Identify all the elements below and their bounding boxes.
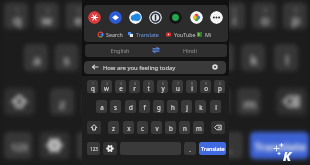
button[interactable]: 123 — [87, 142, 100, 155]
button[interactable]: 1 — [4, 2, 28, 29]
button[interactable]: 0 — [283, 2, 307, 29]
button[interactable]: 3 — [115, 80, 126, 93]
button[interactable]: Search — [98, 30, 138, 39]
button[interactable]: a — [96, 100, 107, 113]
staticText: 123 — [11, 140, 28, 153]
staticText: Mi — [205, 31, 212, 38]
button[interactable]: Swap languages — [152, 46, 160, 54]
button[interactable]: 1 — [87, 80, 98, 93]
button[interactable]: x — [83, 88, 107, 115]
button[interactable]: h — [180, 44, 204, 71]
button[interactable]: l — [210, 100, 221, 113]
button[interactable]: 7 — [172, 80, 183, 93]
button[interactable]: . — [217, 132, 243, 159]
staticText: 0 — [219, 81, 221, 86]
button[interactable]: Red app — [88, 11, 101, 24]
button[interactable]: Green app — [169, 11, 182, 24]
button[interactable]: 3 — [65, 2, 89, 29]
button[interactable]: Space — [76, 132, 210, 159]
button[interactable]: Blue app — [109, 11, 122, 24]
button[interactable]: Photos — [190, 11, 203, 24]
button[interactable]: c — [114, 88, 138, 115]
button[interactable]: Shift — [87, 121, 101, 134]
button[interactable]: f — [139, 100, 150, 113]
staticText: k — [199, 103, 203, 111]
button[interactable]: YouTube — [166, 30, 206, 39]
staticText: g — [157, 103, 161, 111]
staticText: j — [186, 103, 188, 111]
button[interactable]: Keyboard settings — [103, 142, 117, 155]
button[interactable]: Translate — [199, 142, 226, 155]
button[interactable]: k — [241, 44, 265, 71]
button[interactable]: 7 — [190, 2, 215, 29]
button[interactable]: n — [206, 88, 230, 115]
button[interactable]: b — [165, 121, 176, 134]
button[interactable]: Shift — [4, 88, 35, 115]
button[interactable]: Translate — [250, 132, 309, 159]
button[interactable]: j — [210, 44, 234, 71]
button[interactable]: k — [195, 100, 206, 113]
button[interactable]: 9 — [200, 80, 211, 93]
button[interactable]: z — [50, 88, 74, 115]
button[interactable]: m — [193, 121, 204, 134]
button[interactable]: g — [149, 44, 173, 71]
staticText: p — [291, 11, 300, 27]
button[interactable]: 4 — [129, 80, 140, 93]
staticText: g — [158, 50, 166, 67]
staticText: 8 — [232, 4, 237, 15]
staticText: z — [112, 124, 115, 132]
button[interactable]: Settings — [212, 64, 218, 70]
button[interactable]: Info app — [149, 11, 162, 24]
button[interactable]: c — [137, 121, 148, 134]
button[interactable]: b — [175, 88, 199, 115]
button[interactable]: 6 — [157, 80, 168, 93]
button[interactable]: 0 — [214, 80, 225, 93]
button[interactable]: Backspace — [211, 121, 225, 134]
staticText: YouTube — [174, 31, 196, 38]
button[interactable]: s — [54, 44, 79, 71]
button[interactable]: z — [108, 121, 119, 134]
button[interactable]: 123 — [4, 132, 32, 159]
button[interactable]: n — [179, 121, 190, 134]
button[interactable]: 5 — [127, 2, 151, 29]
button[interactable]: Keyboard settings — [39, 132, 70, 159]
button[interactable]: d — [87, 44, 111, 71]
button[interactable]: Mi — [197, 30, 237, 39]
staticText: 4 — [134, 81, 136, 86]
staticText: 0 — [294, 4, 298, 15]
button[interactable]: Cloud app — [129, 11, 142, 24]
button[interactable]: 8 — [186, 80, 197, 93]
button[interactable]: d — [125, 100, 136, 113]
staticText: 4 — [107, 4, 111, 15]
button[interactable]: v — [151, 121, 162, 134]
button[interactable]: h — [167, 100, 178, 113]
staticText: t — [136, 11, 142, 27]
button[interactable]: 8 — [221, 2, 245, 29]
button[interactable]: Backspace — [276, 88, 307, 115]
button[interactable]: s — [110, 100, 121, 113]
button[interactable]: 2 — [35, 2, 59, 29]
button[interactable]: v — [144, 88, 169, 115]
button[interactable]: 4 — [96, 2, 120, 29]
button[interactable]: Back — [92, 64, 98, 70]
button[interactable]: 9 — [252, 2, 276, 29]
staticText: f — [143, 103, 146, 111]
staticText: k — [250, 50, 259, 67]
button[interactable]: 2 — [101, 80, 112, 93]
button[interactable]: More — [210, 11, 223, 24]
button[interactable]: m — [237, 88, 261, 115]
button[interactable]: f — [118, 44, 142, 71]
button[interactable]: Translate — [128, 30, 168, 39]
button[interactable]: g — [153, 100, 164, 113]
button[interactable]: 6 — [158, 2, 182, 29]
button[interactable]: a — [24, 44, 48, 71]
button[interactable]: l — [274, 44, 298, 71]
button[interactable]: x — [123, 121, 134, 134]
button[interactable]: 5 — [143, 80, 154, 93]
staticText: Translate — [136, 31, 159, 38]
button[interactable]: j — [181, 100, 192, 113]
button[interactable] — [84, 61, 226, 74]
button[interactable]: . — [184, 142, 196, 155]
staticText: K — [283, 147, 291, 165]
